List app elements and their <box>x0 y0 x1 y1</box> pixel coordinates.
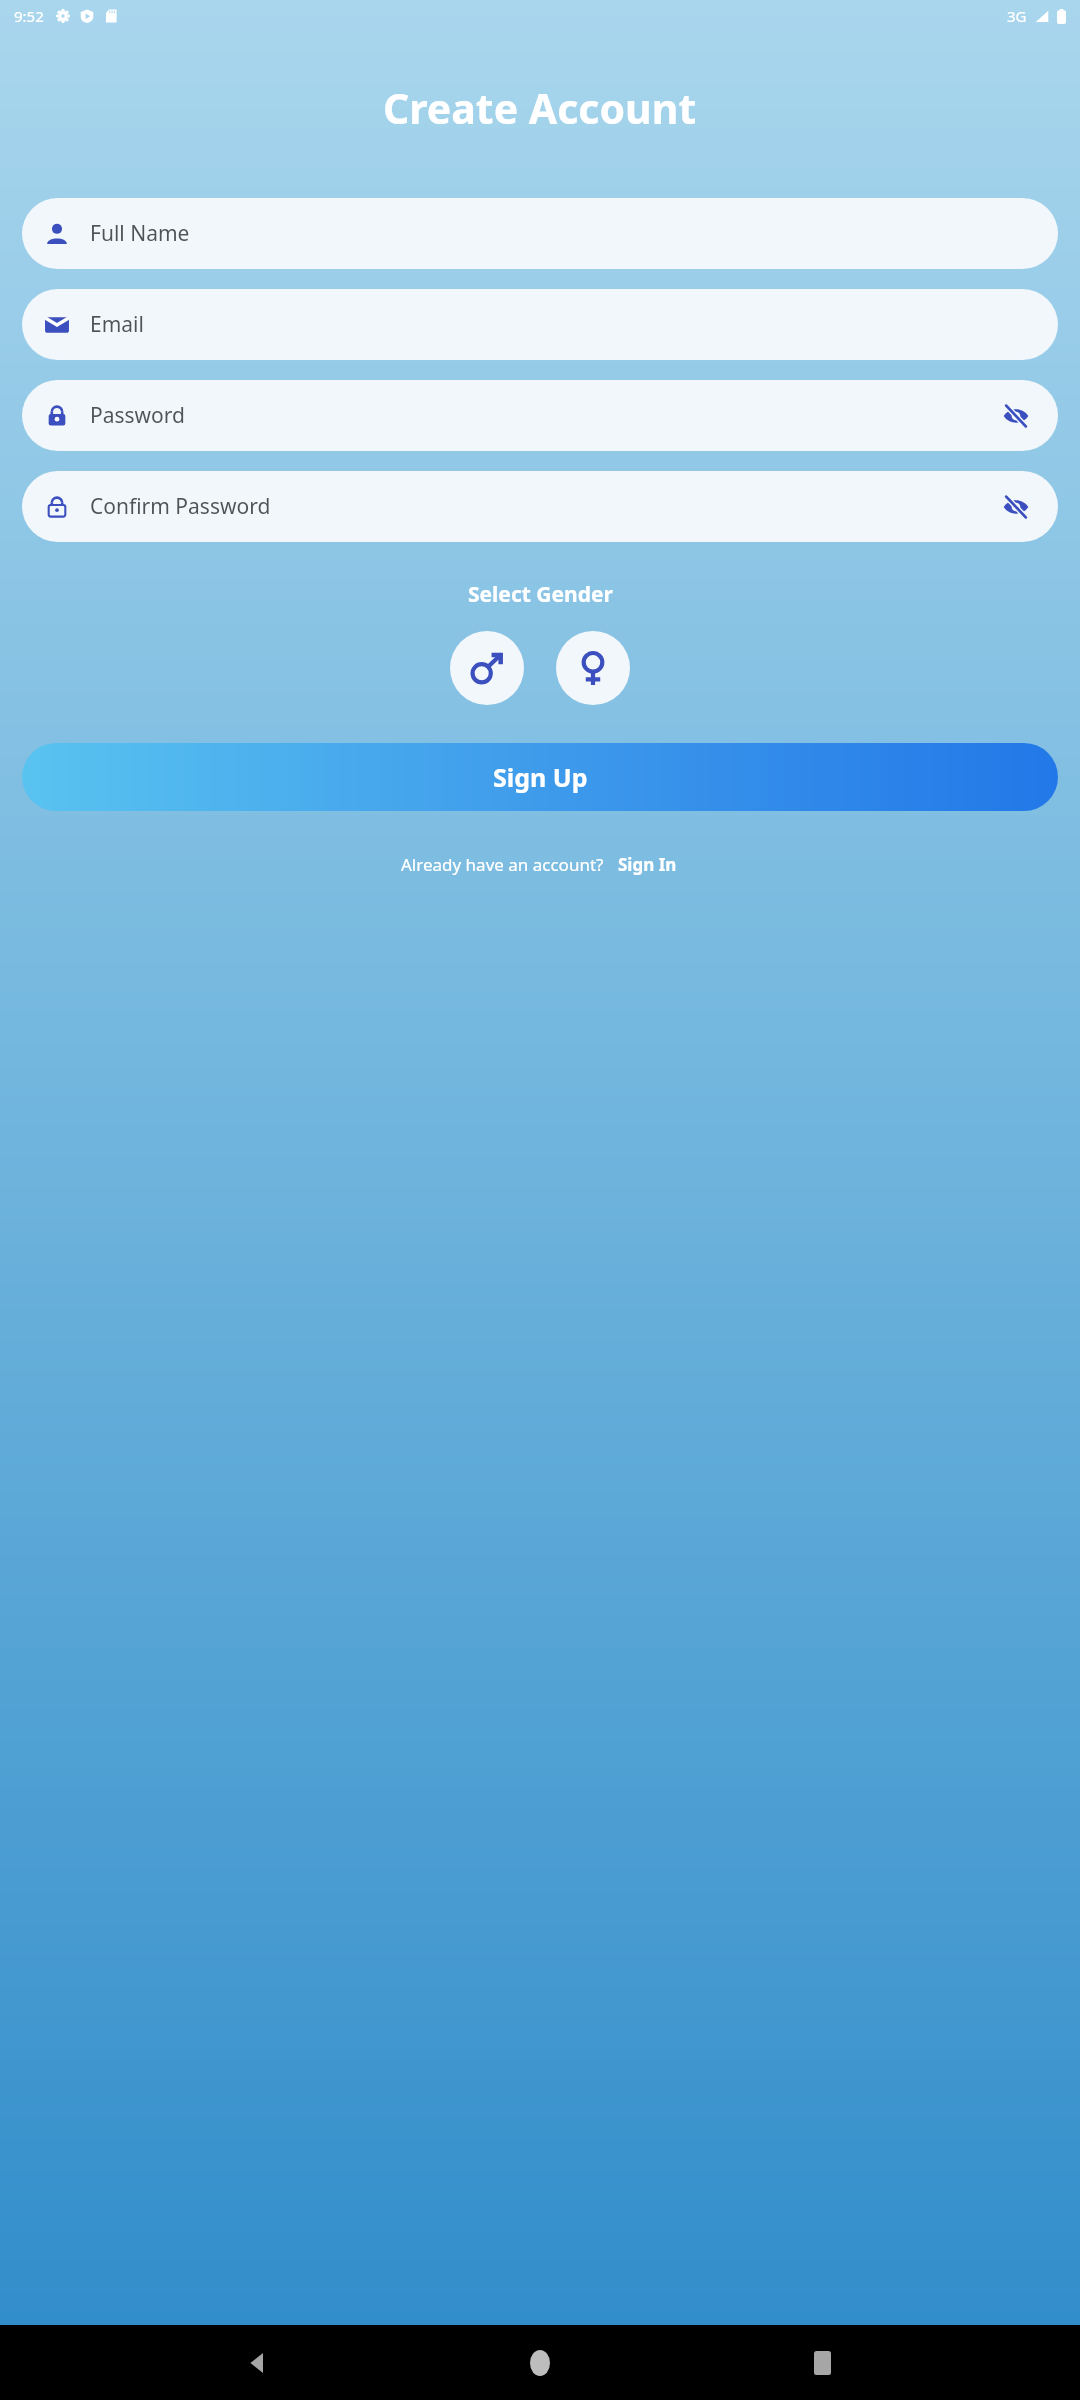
staticText: 9:52 <box>14 6 44 26</box>
staticText: Confirm Password <box>90 492 996 521</box>
button[interactable]: Back <box>234 2339 282 2387</box>
button[interactable]: Full Name <box>22 198 1058 269</box>
button[interactable]: Confirm Password <box>22 471 1058 542</box>
button[interactable]: Male <box>450 631 524 705</box>
button[interactable]: Recent apps <box>798 2339 846 2387</box>
button[interactable]: Toggle password visibility <box>996 487 1036 527</box>
button[interactable]: Home <box>516 2339 564 2387</box>
staticText: Email <box>90 310 1036 339</box>
button[interactable]: Toggle password visibility <box>996 396 1036 436</box>
button[interactable]: Email <box>22 289 1058 360</box>
button[interactable]: Female <box>556 631 630 705</box>
staticText: Full Name <box>90 219 1036 248</box>
button[interactable]: Sign Up <box>22 743 1058 811</box>
staticText: Sign In <box>618 853 677 876</box>
staticText: Sign Up <box>493 760 588 794</box>
staticText: Password <box>90 401 996 430</box>
staticText: 3G <box>1007 6 1027 26</box>
button[interactable]: Sign In <box>616 851 679 878</box>
staticText: Select Gender <box>468 580 613 609</box>
staticText: Create Account <box>383 80 697 136</box>
button[interactable]: Password <box>22 380 1058 451</box>
staticText: Already have an account? <box>401 853 604 876</box>
